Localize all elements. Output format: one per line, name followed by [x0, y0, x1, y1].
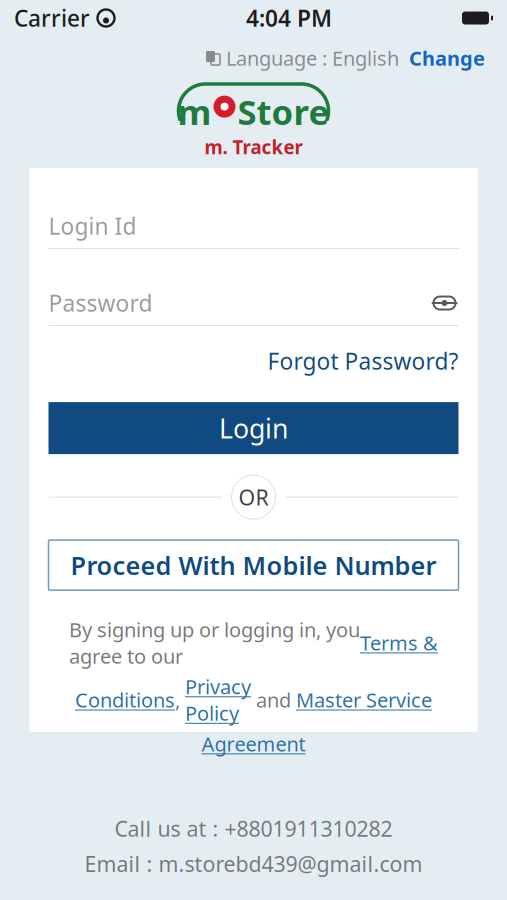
staticText: OR [238, 483, 268, 511]
button[interactable]: Login [48, 402, 458, 454]
staticText: Terms & [360, 629, 438, 656]
staticText: m. Tracker [204, 135, 302, 159]
button[interactable]: Agreement [201, 730, 305, 757]
staticText: Call us at : +8801911310282 [114, 814, 392, 843]
staticText: 4:04 PM [246, 3, 332, 33]
staticText: Language : English [221, 45, 409, 71]
staticText: Forgot Password? [267, 346, 458, 376]
button[interactable]: Master Service [296, 686, 432, 713]
staticText: Proceed With Mobile Number [70, 548, 436, 582]
button[interactable]: Privacy Policy [185, 673, 251, 726]
staticText: Conditions [75, 686, 175, 713]
staticText: and [251, 686, 296, 713]
button[interactable]: Terms & [360, 629, 438, 656]
staticText: Email : m.storebd439@gmail.com [84, 850, 422, 878]
button[interactable]: Show password [430, 292, 458, 314]
staticText: By signing up or logging in, you agree t… [69, 616, 360, 669]
staticText: Login Id [48, 211, 136, 241]
staticText: m [177, 89, 211, 135]
staticText: Master Service [296, 686, 432, 713]
button[interactable]: Conditions [75, 686, 175, 713]
staticText: , [175, 686, 185, 713]
staticText: Login [219, 410, 288, 446]
button[interactable]: Forgot Password? [267, 346, 458, 376]
staticText: Store [237, 89, 329, 135]
button[interactable]: Proceed With Mobile Number [48, 540, 458, 590]
staticText: Change [409, 45, 485, 71]
staticText: Carrier [14, 3, 90, 33]
button[interactable]: Change [409, 45, 485, 71]
staticText: Agreement [201, 730, 305, 757]
staticText: Password [48, 288, 152, 318]
staticText: Privacy Policy [185, 673, 251, 726]
